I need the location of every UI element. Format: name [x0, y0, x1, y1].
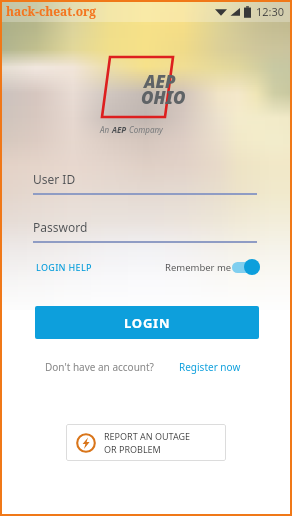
staticText: OR PROBLEM	[104, 443, 161, 455]
staticText: Don't have an account?	[45, 360, 154, 374]
button[interactable]: LOGIN	[35, 306, 259, 339]
button[interactable]: Register now	[179, 360, 241, 374]
button[interactable]: LOGIN HELP	[33, 258, 95, 276]
staticText: LOGIN HELP	[36, 261, 92, 273]
staticText: An	[100, 124, 112, 135]
staticText: Remember me	[165, 261, 232, 274]
staticText: AEP	[112, 124, 127, 135]
staticText: hack-cheat.org	[6, 3, 97, 19]
staticText: User ID	[33, 171, 76, 187]
staticText: LOGIN	[124, 314, 171, 332]
button[interactable]: Remember me toggle	[232, 258, 260, 276]
staticText: REPORT AN OUTAGE	[104, 430, 191, 442]
staticText: OHIO	[141, 86, 186, 109]
staticText: 12:30	[256, 4, 285, 19]
staticText: Password	[33, 219, 88, 235]
staticText: Company	[127, 124, 163, 135]
staticText: Register now	[179, 360, 241, 374]
staticText: AEP	[144, 70, 176, 93]
button[interactable]: REPORT AN OUTAGE	[66, 424, 226, 461]
